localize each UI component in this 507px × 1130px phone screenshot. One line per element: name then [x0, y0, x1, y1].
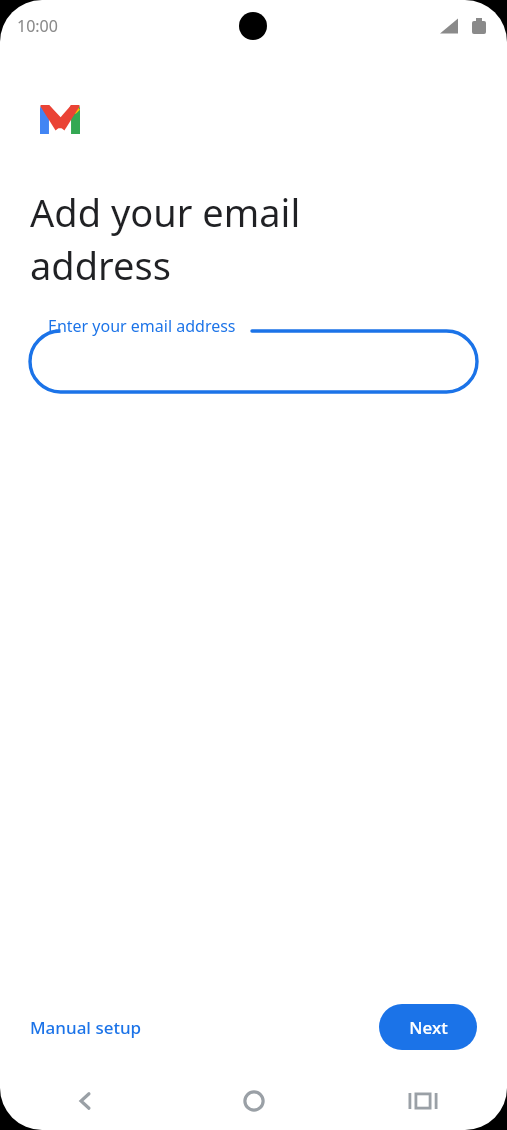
button[interactable]: Recent apps — [338, 1072, 507, 1130]
staticText: Add your email address — [30, 186, 301, 292]
button[interactable]: Manual setup — [18, 1008, 154, 1047]
button[interactable]: Home — [169, 1072, 338, 1130]
staticText: Manual setup — [30, 1016, 142, 1039]
staticText: 10:00 — [17, 15, 58, 37]
button[interactable]: Enter your email address — [30, 313, 477, 393]
button[interactable]: Next — [379, 1004, 477, 1050]
staticText: Next — [409, 1016, 448, 1039]
button[interactable]: Back — [0, 1072, 169, 1130]
staticText: Enter your email address — [48, 315, 236, 337]
